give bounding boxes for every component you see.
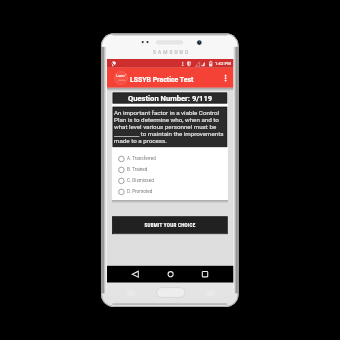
staticText: An important factor in a viable Control … xyxy=(114,109,224,144)
button[interactable]: Back xyxy=(128,267,143,281)
button[interactable]: Home xyxy=(163,267,178,281)
button[interactable]: C. Dismissed xyxy=(112,175,228,186)
staticText: D. Promoted xyxy=(127,189,153,194)
button[interactable]: SUBMIT YOUR CHOICE xyxy=(113,217,227,233)
staticText: Lean xyxy=(116,73,125,78)
staticText: SAMSUNG xyxy=(153,50,191,56)
staticText: B. Trained xyxy=(127,167,148,172)
button[interactable]: More options xyxy=(219,71,232,85)
staticText: C. Dismissed xyxy=(127,178,154,183)
staticText: SUBMIT YOUR CHOICE xyxy=(144,223,196,228)
button[interactable]: D. Promoted xyxy=(112,186,228,197)
button[interactable]: A. Transferred xyxy=(112,153,228,164)
staticText: LSSYB Practice Test xyxy=(130,76,194,84)
button[interactable]: B. Trained xyxy=(112,164,228,175)
staticText: 1:53 PM xyxy=(215,61,231,66)
button[interactable]: Recent apps xyxy=(198,267,213,281)
staticText: Question Number: 9/119 xyxy=(128,94,213,103)
staticText: A. Transferred xyxy=(127,156,156,161)
